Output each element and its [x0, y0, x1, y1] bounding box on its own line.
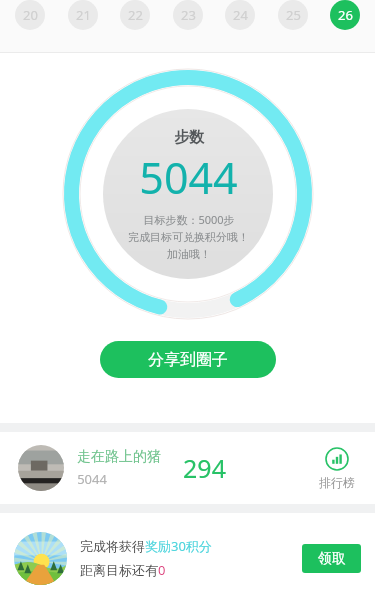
button[interactable]: 23 — [173, 0, 203, 30]
staticText: 21 — [76, 6, 91, 24]
staticText: 25 — [286, 6, 301, 24]
staticText: 走在路上的猪 — [77, 448, 161, 466]
staticText: 5044 — [77, 470, 107, 488]
button[interactable]: 排行榜 — [317, 445, 357, 492]
staticText: 20 — [23, 6, 38, 24]
staticText: 22 — [128, 6, 143, 24]
staticText: 目标步数：5000步 — [143, 212, 235, 227]
button[interactable]: 分享到圈子 — [100, 341, 276, 378]
staticText: 5044 — [139, 148, 238, 207]
button[interactable]: 走在路上的猪 — [0, 432, 375, 504]
staticText: 23 — [181, 6, 196, 24]
button[interactable]: 24 — [225, 0, 255, 30]
staticText: 距离目标还有0 — [80, 561, 166, 579]
staticText: 26 — [338, 6, 353, 24]
staticText: 分享到圈子 — [148, 350, 228, 370]
button[interactable]: 26 — [330, 0, 360, 30]
staticText: 完成目标可兑换积分哦！ — [128, 230, 249, 244]
button[interactable]: 20 — [15, 0, 45, 30]
button[interactable]: 22 — [120, 0, 150, 30]
staticText: 完成将获得奖励30积分 — [80, 537, 212, 555]
button[interactable]: 领取 — [302, 544, 361, 573]
staticText: 24 — [233, 6, 248, 24]
staticText: 294 — [183, 451, 226, 485]
staticText: 加油哦！ — [167, 247, 211, 261]
staticText: 步数 — [174, 128, 204, 147]
staticText: 领取 — [318, 550, 346, 568]
button[interactable]: 21 — [68, 0, 98, 30]
button[interactable]: 25 — [278, 0, 308, 30]
staticText: 排行榜 — [319, 475, 355, 490]
